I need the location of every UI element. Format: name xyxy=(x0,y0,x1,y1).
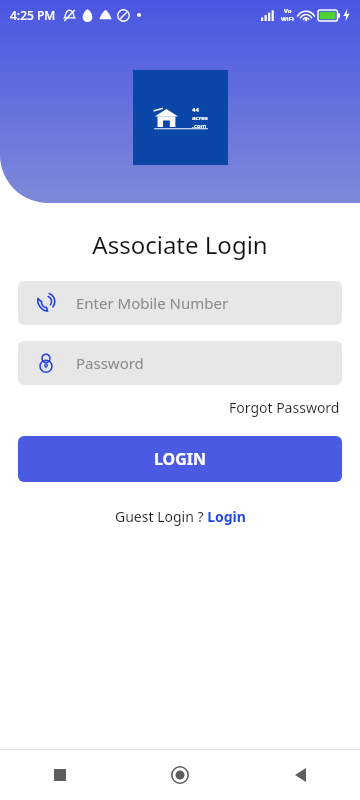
staticText: 44 xyxy=(192,106,199,114)
button[interactable]: LOGIN xyxy=(18,436,342,482)
staticText: WiFi xyxy=(281,15,294,23)
staticText: Forgot Password xyxy=(229,398,340,417)
button[interactable]: Back xyxy=(240,750,360,800)
button[interactable]: Forgot Password xyxy=(227,395,342,420)
button[interactable]: Password xyxy=(18,341,342,385)
staticText: .com xyxy=(192,122,207,130)
staticText: 4:25 PM xyxy=(10,7,56,23)
button[interactable]: Guest Login ? Login xyxy=(111,504,250,529)
staticText: Associate Login xyxy=(0,228,360,261)
button[interactable]: Recents xyxy=(0,750,120,800)
staticText: Guest Login ? Login xyxy=(115,507,246,526)
staticText: LOGIN xyxy=(154,448,207,470)
button[interactable]: Enter Mobile Number xyxy=(18,281,342,325)
staticText: acres xyxy=(192,114,208,122)
button[interactable]: Home xyxy=(120,750,240,800)
staticText: Password xyxy=(76,353,144,373)
staticText: Enter Mobile Number xyxy=(76,293,229,313)
staticText: Vo xyxy=(284,7,292,15)
